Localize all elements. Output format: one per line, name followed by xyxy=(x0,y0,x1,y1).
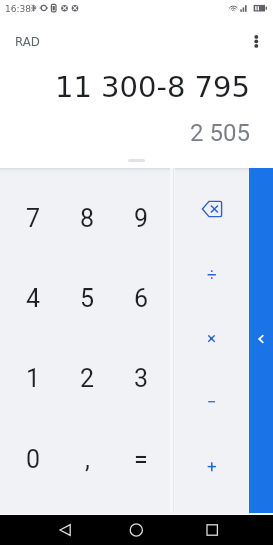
button[interactable]: 6 xyxy=(114,258,168,338)
button[interactable]: Recent apps xyxy=(192,515,232,545)
button[interactable]: RAD xyxy=(9,31,46,53)
button[interactable]: Home xyxy=(116,515,156,545)
staticText: 9 xyxy=(134,204,149,233)
button[interactable]: 3 xyxy=(114,338,168,419)
staticText: 11 300-8 795 xyxy=(55,70,250,104)
button[interactable]: = xyxy=(114,419,168,500)
button[interactable]: More options xyxy=(236,21,273,61)
button[interactable]: 5 xyxy=(60,258,114,338)
button[interactable]: , xyxy=(60,419,114,500)
staticText: = xyxy=(134,445,148,474)
button[interactable]: multiply xyxy=(176,306,247,370)
staticText: , xyxy=(85,445,90,474)
staticText: + xyxy=(207,456,217,476)
button[interactable]: plus xyxy=(176,434,247,498)
staticText: 3 xyxy=(134,364,149,393)
staticText: 5 xyxy=(80,284,95,313)
button[interactable]: Back xyxy=(45,515,85,545)
staticText: × xyxy=(207,328,217,348)
staticText: 6 xyxy=(134,284,149,313)
staticText: 8 xyxy=(80,204,95,233)
button[interactable]: 7 xyxy=(6,178,60,258)
staticText: 7 xyxy=(26,204,41,233)
button[interactable]: 4 xyxy=(6,258,60,338)
button[interactable]: 8 xyxy=(60,178,114,258)
button[interactable]: Open advanced pad xyxy=(249,168,273,513)
button[interactable]: Drag handle xyxy=(128,159,145,162)
button[interactable]: minus xyxy=(176,370,247,434)
button[interactable]: divide xyxy=(176,241,247,306)
button[interactable]: 9 xyxy=(114,178,168,258)
staticText: 0 xyxy=(26,445,41,474)
staticText: 2 xyxy=(80,364,95,393)
staticText: RAD xyxy=(15,35,40,49)
staticText: ÷ xyxy=(207,264,217,284)
staticText: 4 xyxy=(26,284,41,313)
button[interactable]: 2 xyxy=(60,338,114,419)
button[interactable]: 1 xyxy=(6,338,60,419)
button[interactable]: backspace xyxy=(176,176,247,241)
staticText: 1 xyxy=(26,364,41,393)
staticText: 2 505 xyxy=(190,119,250,147)
staticText: 16:38 xyxy=(5,4,31,14)
button[interactable]: 0 xyxy=(6,419,60,500)
staticText: − xyxy=(207,392,217,412)
